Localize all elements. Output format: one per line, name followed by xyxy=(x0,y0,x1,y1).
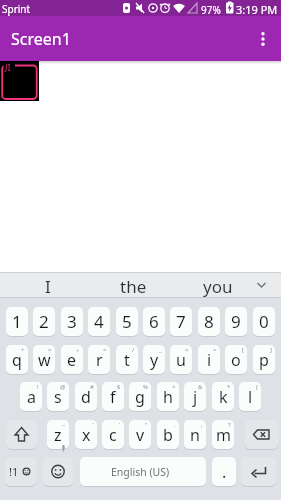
button[interactable] xyxy=(6,420,37,449)
button[interactable]: t xyxy=(116,345,138,374)
staticText: # xyxy=(90,383,94,391)
button[interactable]: h xyxy=(157,382,179,411)
staticText: j xyxy=(193,386,198,408)
staticText: " xyxy=(145,421,148,429)
staticText: 8 xyxy=(204,310,214,333)
staticText: Screen1 xyxy=(11,28,71,50)
button[interactable]: f xyxy=(102,382,124,411)
staticText: ÷ xyxy=(76,346,80,354)
staticText: a xyxy=(27,386,36,408)
button[interactable]: z xyxy=(47,420,69,449)
staticText: ? xyxy=(228,421,231,429)
button[interactable]: o xyxy=(225,345,247,374)
button[interactable]: s xyxy=(47,382,69,411)
button[interactable]: w xyxy=(33,345,55,374)
button[interactable]: I xyxy=(0,272,281,298)
button[interactable]: y xyxy=(143,345,165,374)
staticText: h xyxy=(163,386,173,408)
staticText: 1 xyxy=(12,310,22,333)
staticText: w xyxy=(38,349,51,371)
staticText: / xyxy=(132,346,135,354)
staticText: e xyxy=(67,349,77,371)
button[interactable]: g xyxy=(129,382,151,411)
staticText: ' xyxy=(119,421,121,429)
button[interactable]: x xyxy=(75,420,97,449)
button[interactable]: e xyxy=(61,345,83,374)
button[interactable]: d xyxy=(75,382,97,411)
button[interactable]: 4 xyxy=(88,307,110,336)
button[interactable]: r xyxy=(88,345,110,374)
staticText: g xyxy=(135,386,145,408)
staticText: ^ xyxy=(172,383,176,391)
button[interactable]: 9 xyxy=(225,307,247,336)
staticText: x xyxy=(82,424,91,446)
staticText: , xyxy=(201,421,203,429)
button[interactable]: 5 xyxy=(116,307,138,336)
staticText: !1 xyxy=(9,464,19,479)
button[interactable]: a xyxy=(20,382,42,411)
button[interactable]: 6 xyxy=(143,307,165,336)
staticText: English (US) xyxy=(111,465,170,479)
staticText: > xyxy=(213,346,217,354)
button[interactable]: 1 xyxy=(6,307,28,336)
staticText: . xyxy=(174,421,176,429)
button[interactable] xyxy=(241,457,276,486)
staticText: _ xyxy=(159,346,162,354)
button[interactable]: JI xyxy=(0,61,39,101)
button[interactable]: n xyxy=(184,420,206,449)
button[interactable]: k xyxy=(212,382,234,411)
staticText: z xyxy=(54,424,62,446)
staticText: * xyxy=(227,383,231,391)
button[interactable]: p xyxy=(253,345,275,374)
staticText: you xyxy=(203,275,233,298)
staticText: m xyxy=(216,424,231,446)
button[interactable]: 3 xyxy=(61,307,83,336)
staticText: y xyxy=(150,349,159,371)
staticText: ! xyxy=(37,383,39,391)
staticText: n xyxy=(190,424,200,446)
staticText: p xyxy=(259,349,269,371)
button[interactable] xyxy=(80,457,206,486)
button[interactable]: b xyxy=(157,420,179,449)
staticText: c xyxy=(109,424,117,446)
button[interactable]: m xyxy=(212,420,234,449)
staticText: b xyxy=(163,424,173,446)
staticText: Sprint xyxy=(2,2,31,16)
button[interactable]: . xyxy=(212,457,236,486)
staticText: % xyxy=(143,383,148,391)
button[interactable]: i xyxy=(198,345,220,374)
staticText: r xyxy=(96,349,103,371)
button[interactable]: 0 xyxy=(253,307,275,336)
staticText: 4 xyxy=(94,310,104,333)
button[interactable]: 7 xyxy=(170,307,192,336)
staticText: v xyxy=(136,424,145,446)
staticText: 0 xyxy=(259,310,269,333)
staticText: 7 xyxy=(176,310,186,333)
button[interactable] xyxy=(43,457,73,486)
staticText: t xyxy=(124,349,130,371)
staticText: 9 xyxy=(231,310,241,333)
staticText: 97% xyxy=(201,3,221,17)
staticText: × xyxy=(48,346,52,354)
button[interactable]: v xyxy=(129,420,151,449)
button[interactable]: c xyxy=(102,420,124,449)
button[interactable]: j xyxy=(184,382,206,411)
staticText: = xyxy=(103,346,107,354)
staticText: + xyxy=(21,346,25,354)
staticText: i xyxy=(207,349,212,371)
staticText: 3 xyxy=(67,310,77,333)
button[interactable]: 8 xyxy=(198,307,220,336)
staticText: f xyxy=(110,386,116,408)
button[interactable] xyxy=(245,420,278,449)
button[interactable]: q xyxy=(6,345,28,374)
button[interactable] xyxy=(5,457,36,486)
button[interactable] xyxy=(254,30,272,48)
staticText: < xyxy=(185,346,189,354)
button[interactable]: l xyxy=(239,382,261,411)
staticText: ~ xyxy=(62,421,66,429)
staticText: @ xyxy=(60,383,66,391)
button[interactable]: 2 xyxy=(33,307,55,336)
staticText: & xyxy=(198,383,203,391)
button[interactable]: u xyxy=(170,345,192,374)
staticText: JI xyxy=(5,61,11,73)
